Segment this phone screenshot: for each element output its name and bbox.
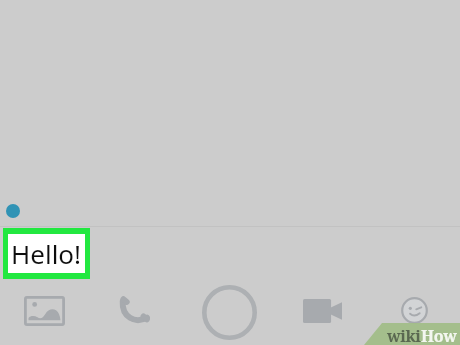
staticText: How xyxy=(421,325,457,345)
button[interactable]: Insert photo xyxy=(24,296,65,326)
button[interactable]: Video xyxy=(303,299,342,323)
button[interactable]: Record xyxy=(202,285,257,340)
button[interactable]: Emoji xyxy=(401,297,428,324)
staticText: wiki xyxy=(387,325,421,345)
staticText: Hello! xyxy=(11,236,82,271)
button[interactable]: Call xyxy=(120,296,150,323)
